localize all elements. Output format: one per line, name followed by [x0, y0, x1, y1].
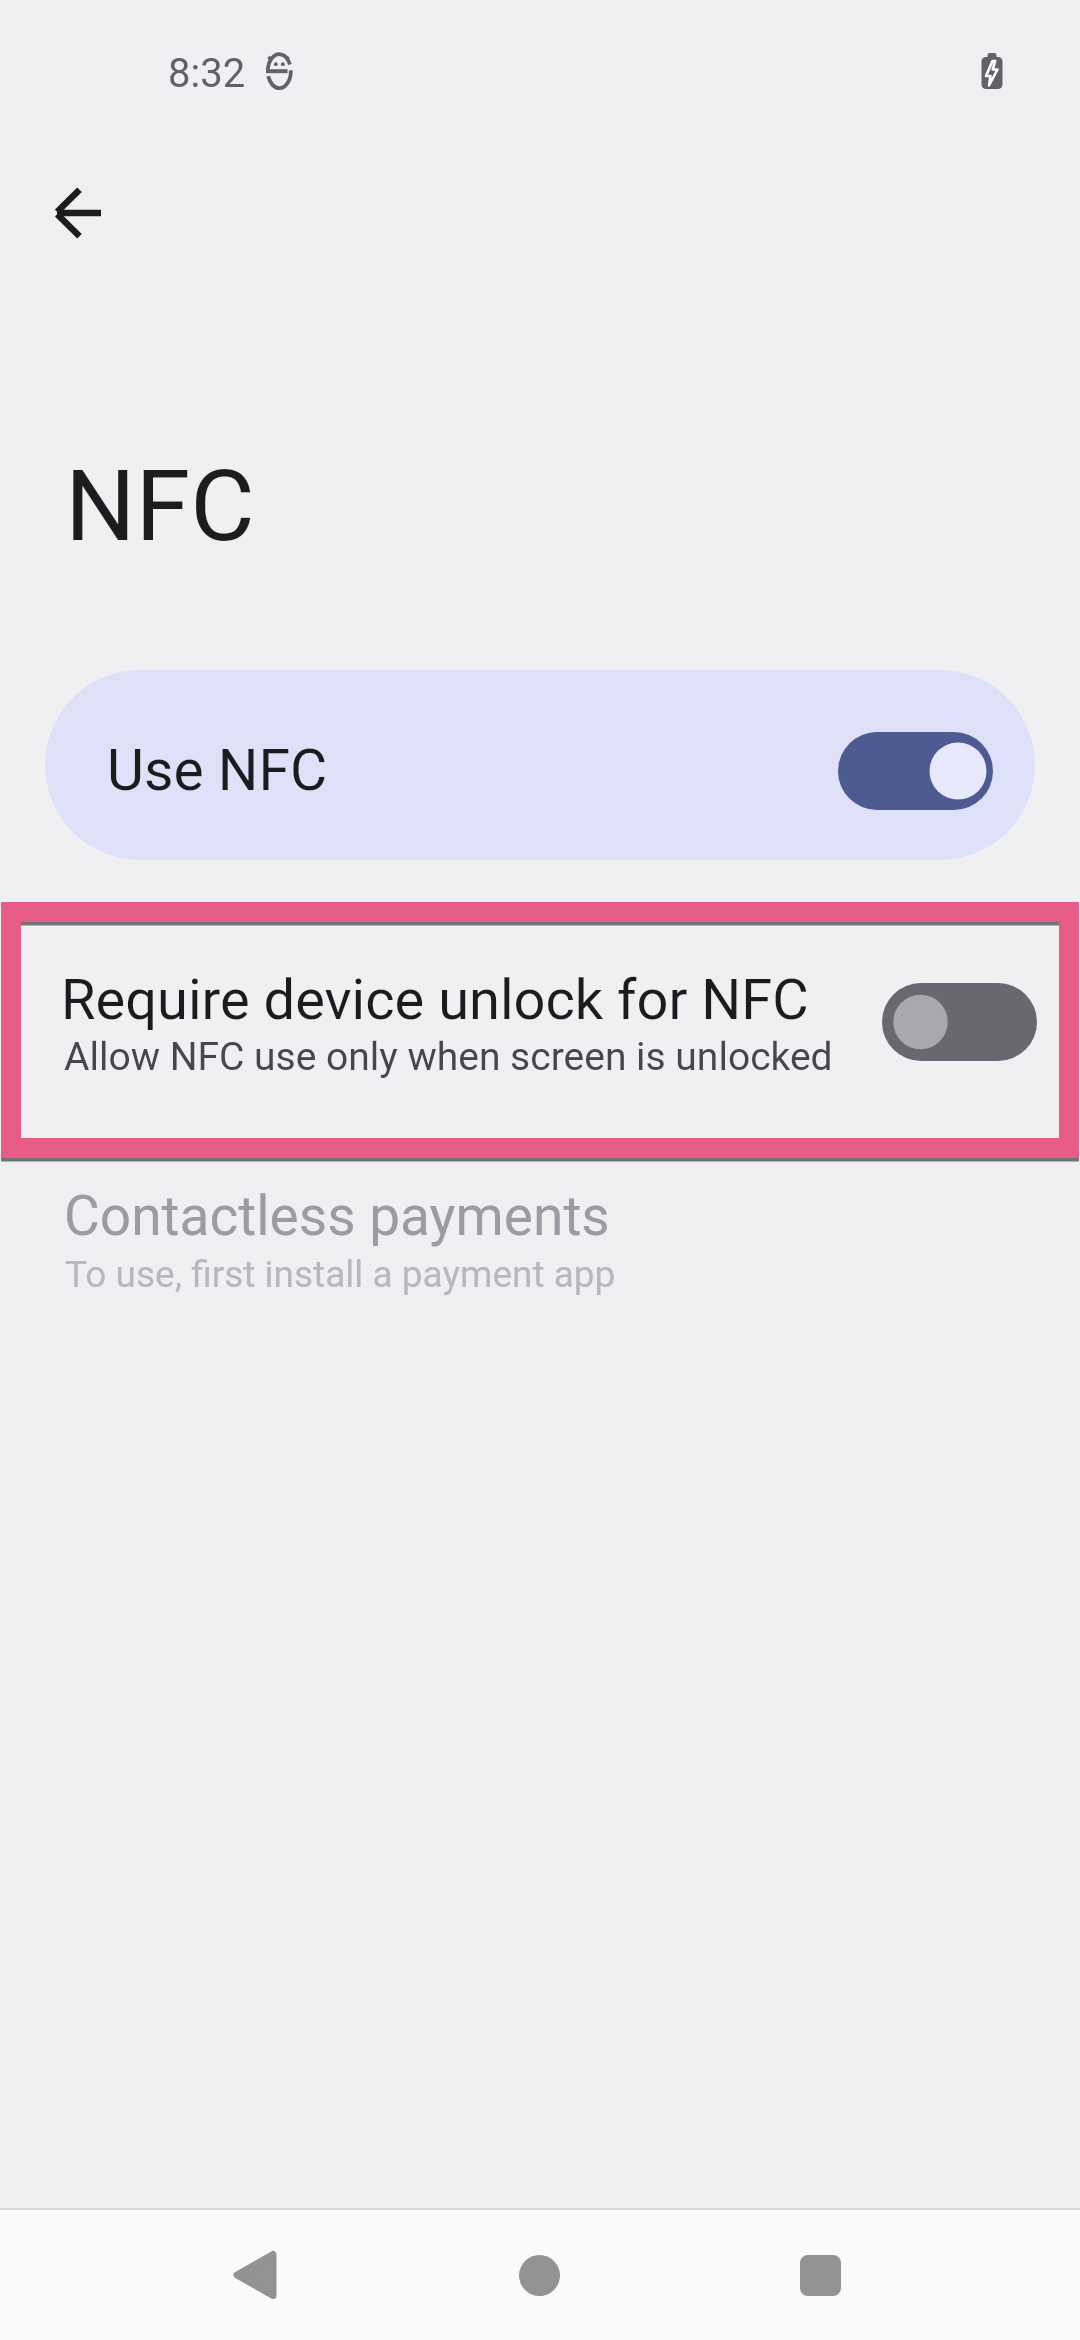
button[interactable]: Require device unlock for NFC: [21, 922, 1059, 1140]
button[interactable]: [770, 2225, 870, 2325]
button[interactable]: Use NFC: [45, 670, 1035, 860]
staticText: NFC: [65, 448, 255, 564]
button[interactable]: [489, 2225, 589, 2325]
button[interactable]: Contactless payments: [0, 1165, 1080, 1325]
staticText: 8:32: [168, 50, 246, 97]
staticText: Require device unlock for NFC: [61, 967, 809, 1033]
staticText: To use, first install a payment app: [65, 1253, 616, 1296]
button[interactable]: [31, 165, 127, 261]
button[interactable]: [838, 732, 993, 810]
button[interactable]: [205, 2225, 305, 2325]
button[interactable]: [882, 983, 1037, 1061]
staticText: Contactless payments: [64, 1184, 610, 1248]
staticText: Use NFC: [107, 737, 328, 804]
staticText: Allow NFC use only when screen is unlock…: [64, 1034, 833, 1080]
